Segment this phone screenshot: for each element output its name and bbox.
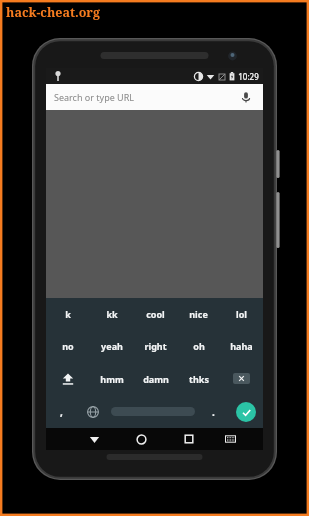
button[interactable]: Hide keyboard: [212, 428, 249, 450]
button[interactable]: Back: [71, 428, 118, 450]
staticText: thks: [189, 373, 209, 385]
button[interactable]: Home: [118, 428, 165, 450]
staticText: ,: [60, 405, 63, 419]
button[interactable]: oh: [177, 330, 220, 362]
button[interactable]: Enter: [229, 395, 263, 428]
staticText: right: [144, 340, 167, 352]
staticText: haha: [230, 340, 253, 352]
staticText: hack-cheat.org: [6, 4, 100, 21]
staticText: lol: [236, 308, 247, 320]
button[interactable]: damn: [134, 362, 177, 395]
staticText: k: [65, 308, 71, 320]
staticText: .: [212, 405, 215, 419]
button[interactable]: Recent apps: [165, 428, 212, 450]
staticText: oh: [193, 340, 205, 352]
button[interactable]: nice: [177, 298, 220, 330]
button[interactable]: Space: [108, 395, 198, 428]
button[interactable]: Voice search: [237, 88, 255, 106]
button[interactable]: no: [46, 330, 90, 362]
staticText: cool: [146, 308, 165, 320]
staticText: no: [62, 340, 74, 352]
button[interactable]: Search or type URL: [46, 84, 263, 110]
button[interactable]: yeah: [90, 330, 134, 362]
button[interactable]: Delete: [220, 362, 263, 395]
button[interactable]: lol: [220, 298, 263, 330]
button[interactable]: thks: [177, 362, 220, 395]
staticText: nice: [189, 308, 208, 320]
button[interactable]: cool: [134, 298, 177, 330]
button[interactable]: ,: [46, 395, 77, 428]
button[interactable]: Shift: [46, 362, 90, 395]
button[interactable]: haha: [220, 330, 263, 362]
button[interactable]: right: [134, 330, 177, 362]
button[interactable]: hmm: [90, 362, 134, 395]
button[interactable]: Change language: [77, 395, 108, 428]
staticText: yeah: [101, 340, 123, 352]
staticText: damn: [143, 373, 169, 385]
staticText: hmm: [100, 373, 124, 385]
button[interactable]: k: [46, 298, 90, 330]
staticText: kk: [106, 308, 118, 320]
staticText: Search or type URL: [54, 91, 237, 103]
button[interactable]: .: [198, 395, 229, 428]
staticText: 10:29: [238, 71, 259, 82]
button[interactable]: kk: [90, 298, 134, 330]
